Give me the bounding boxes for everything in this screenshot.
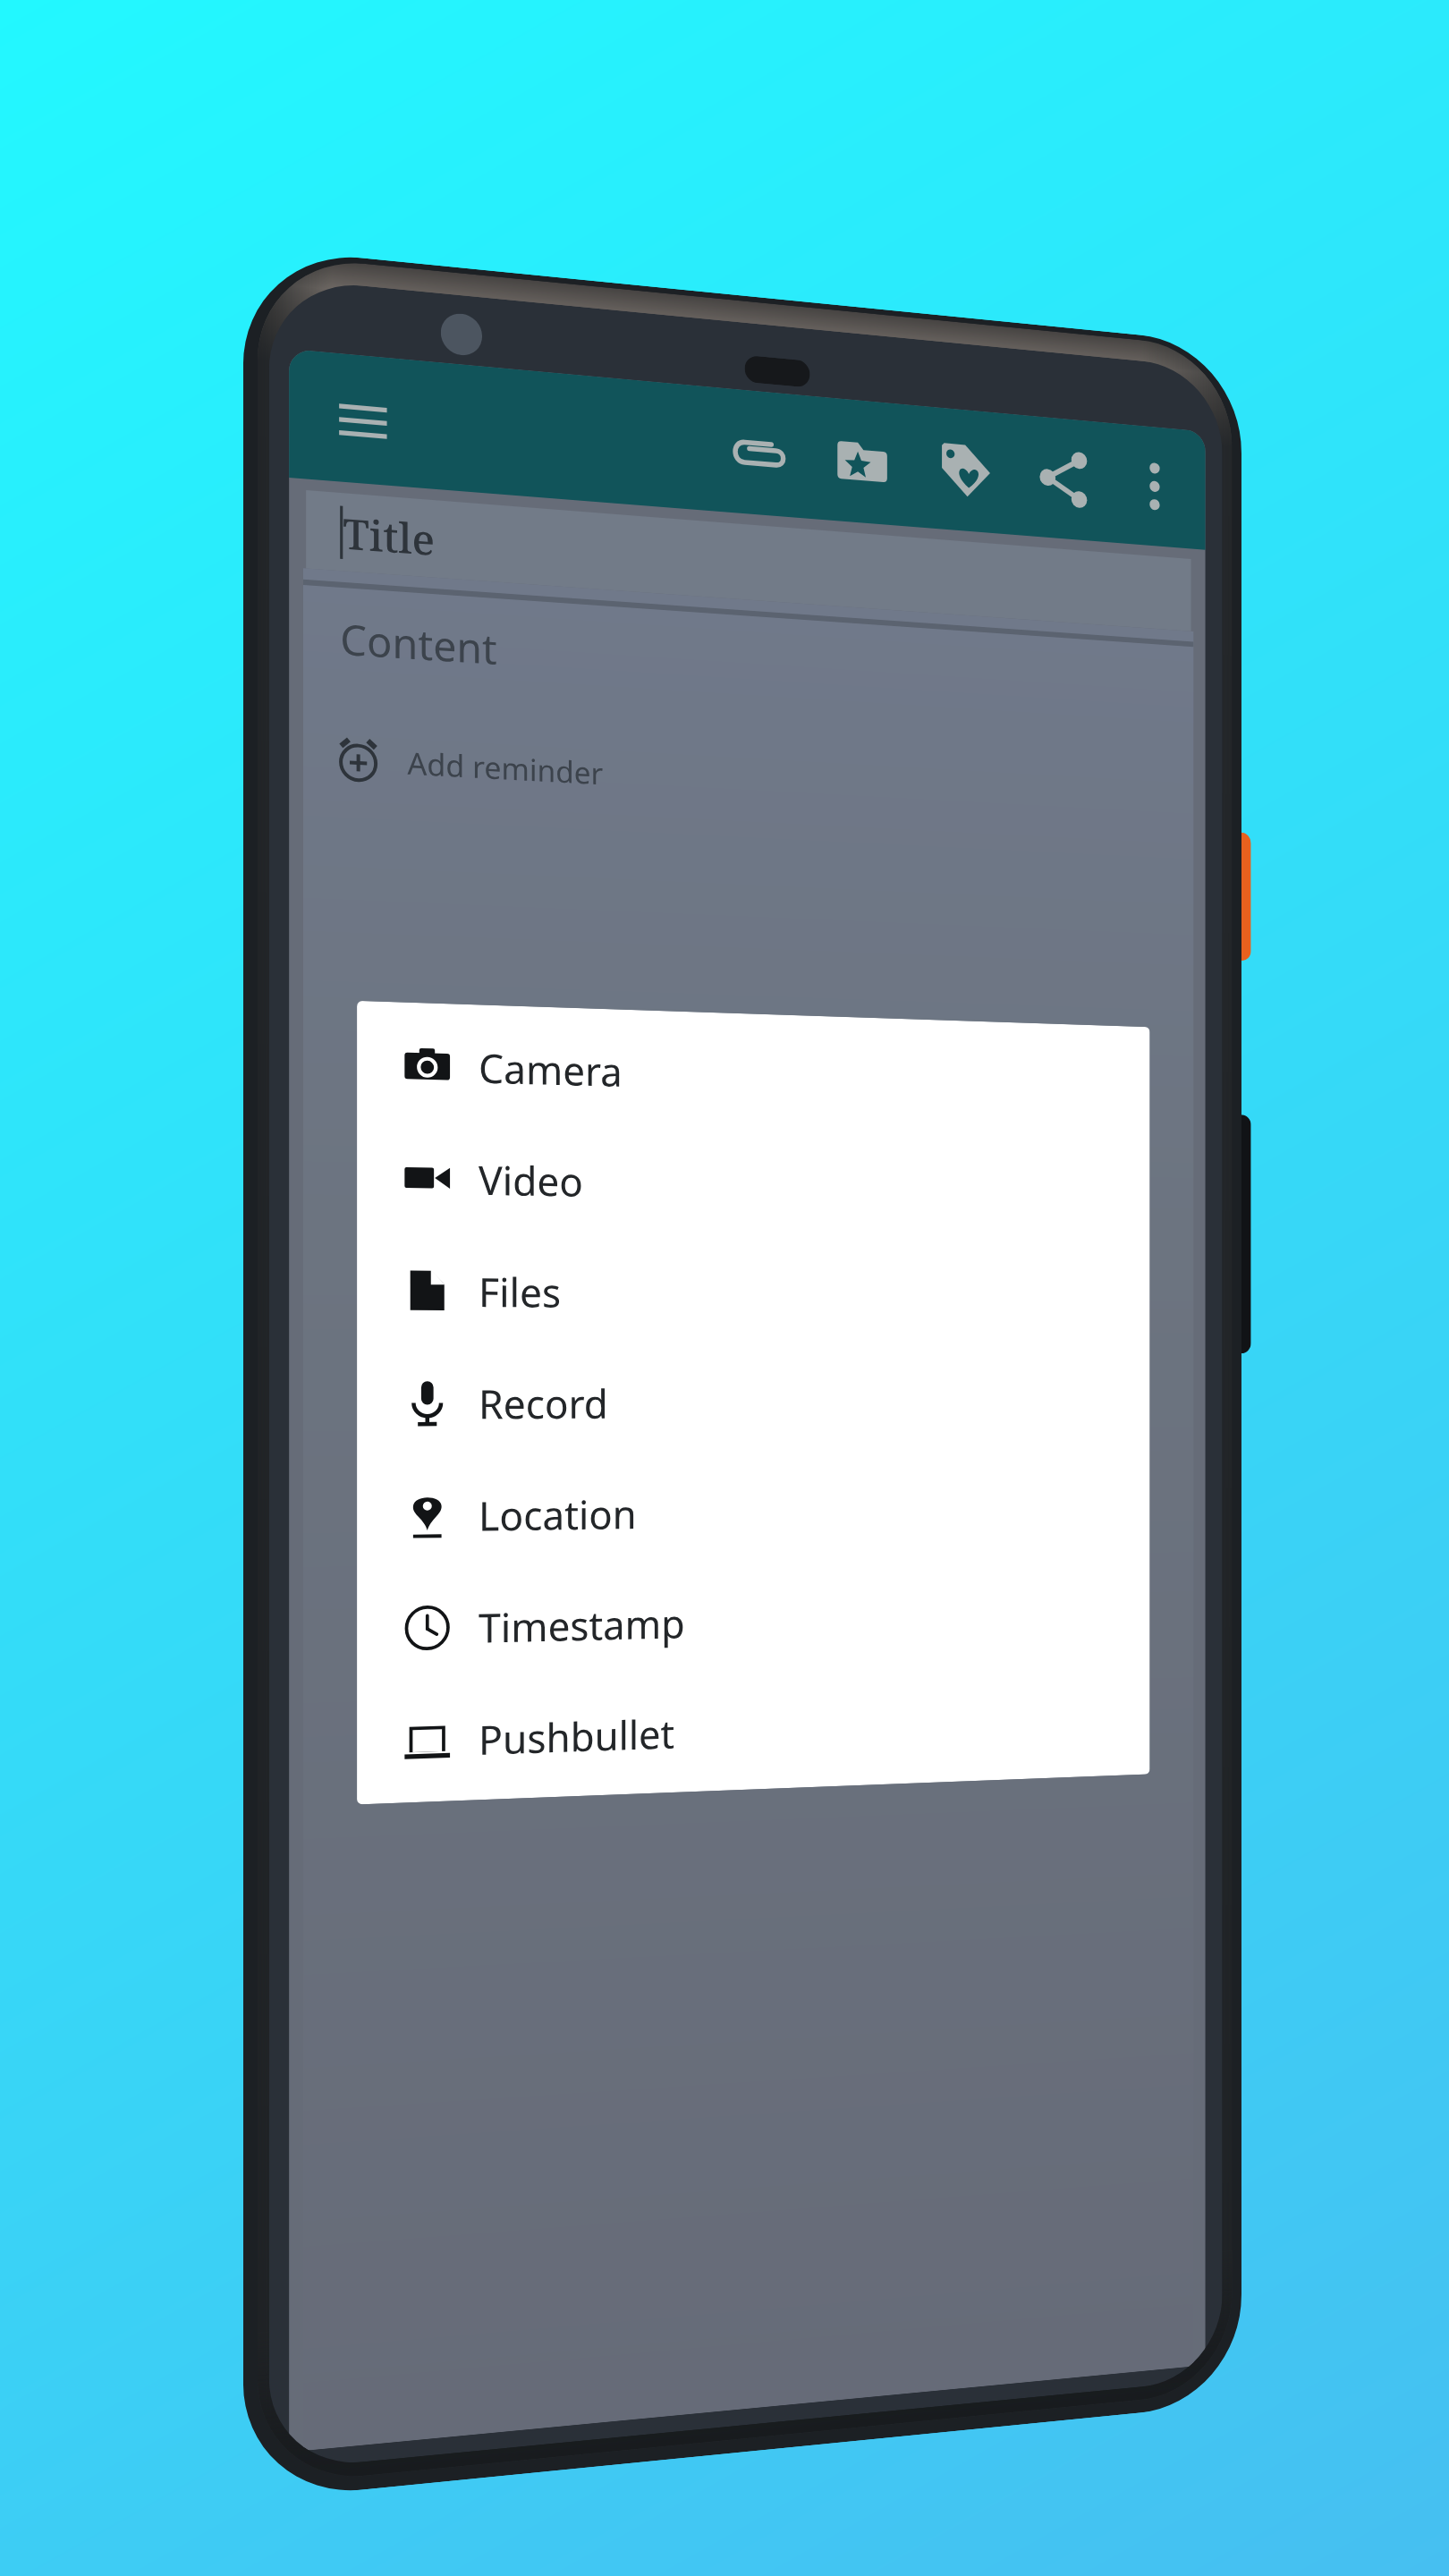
button[interactable]: Attach file — [706, 395, 811, 511]
button[interactable]: Notebooks — [811, 404, 913, 519]
staticText: Record — [479, 1376, 608, 1430]
button[interactable]: Camera — [357, 1006, 1150, 1137]
staticText: Title — [343, 504, 435, 568]
staticText: Pushbullet — [479, 1706, 675, 1766]
button[interactable]: Share — [1014, 422, 1113, 535]
button[interactable]: Location — [357, 1453, 1150, 1572]
button[interactable]: Files — [357, 1233, 1150, 1348]
staticText: Video — [479, 1152, 583, 1207]
button[interactable]: Add reminder — [334, 722, 604, 808]
button[interactable]: Navigation menu — [300, 353, 424, 486]
button[interactable]: Record — [357, 1346, 1150, 1459]
staticText: Timestamp — [479, 1596, 685, 1654]
staticText: Camera — [479, 1040, 623, 1097]
staticText: Files — [479, 1264, 561, 1318]
staticText: Add reminder — [407, 742, 604, 794]
button[interactable]: Timestamp — [357, 1558, 1150, 1686]
button[interactable]: Pushbullet — [357, 1664, 1150, 1799]
button[interactable]: Video — [357, 1120, 1150, 1243]
button[interactable]: Title field — [306, 490, 1191, 631]
staticText: Location — [479, 1486, 637, 1542]
button[interactable]: Tags — [913, 413, 1014, 527]
button[interactable]: More options — [1113, 426, 1196, 547]
staticText: Content — [340, 610, 498, 676]
